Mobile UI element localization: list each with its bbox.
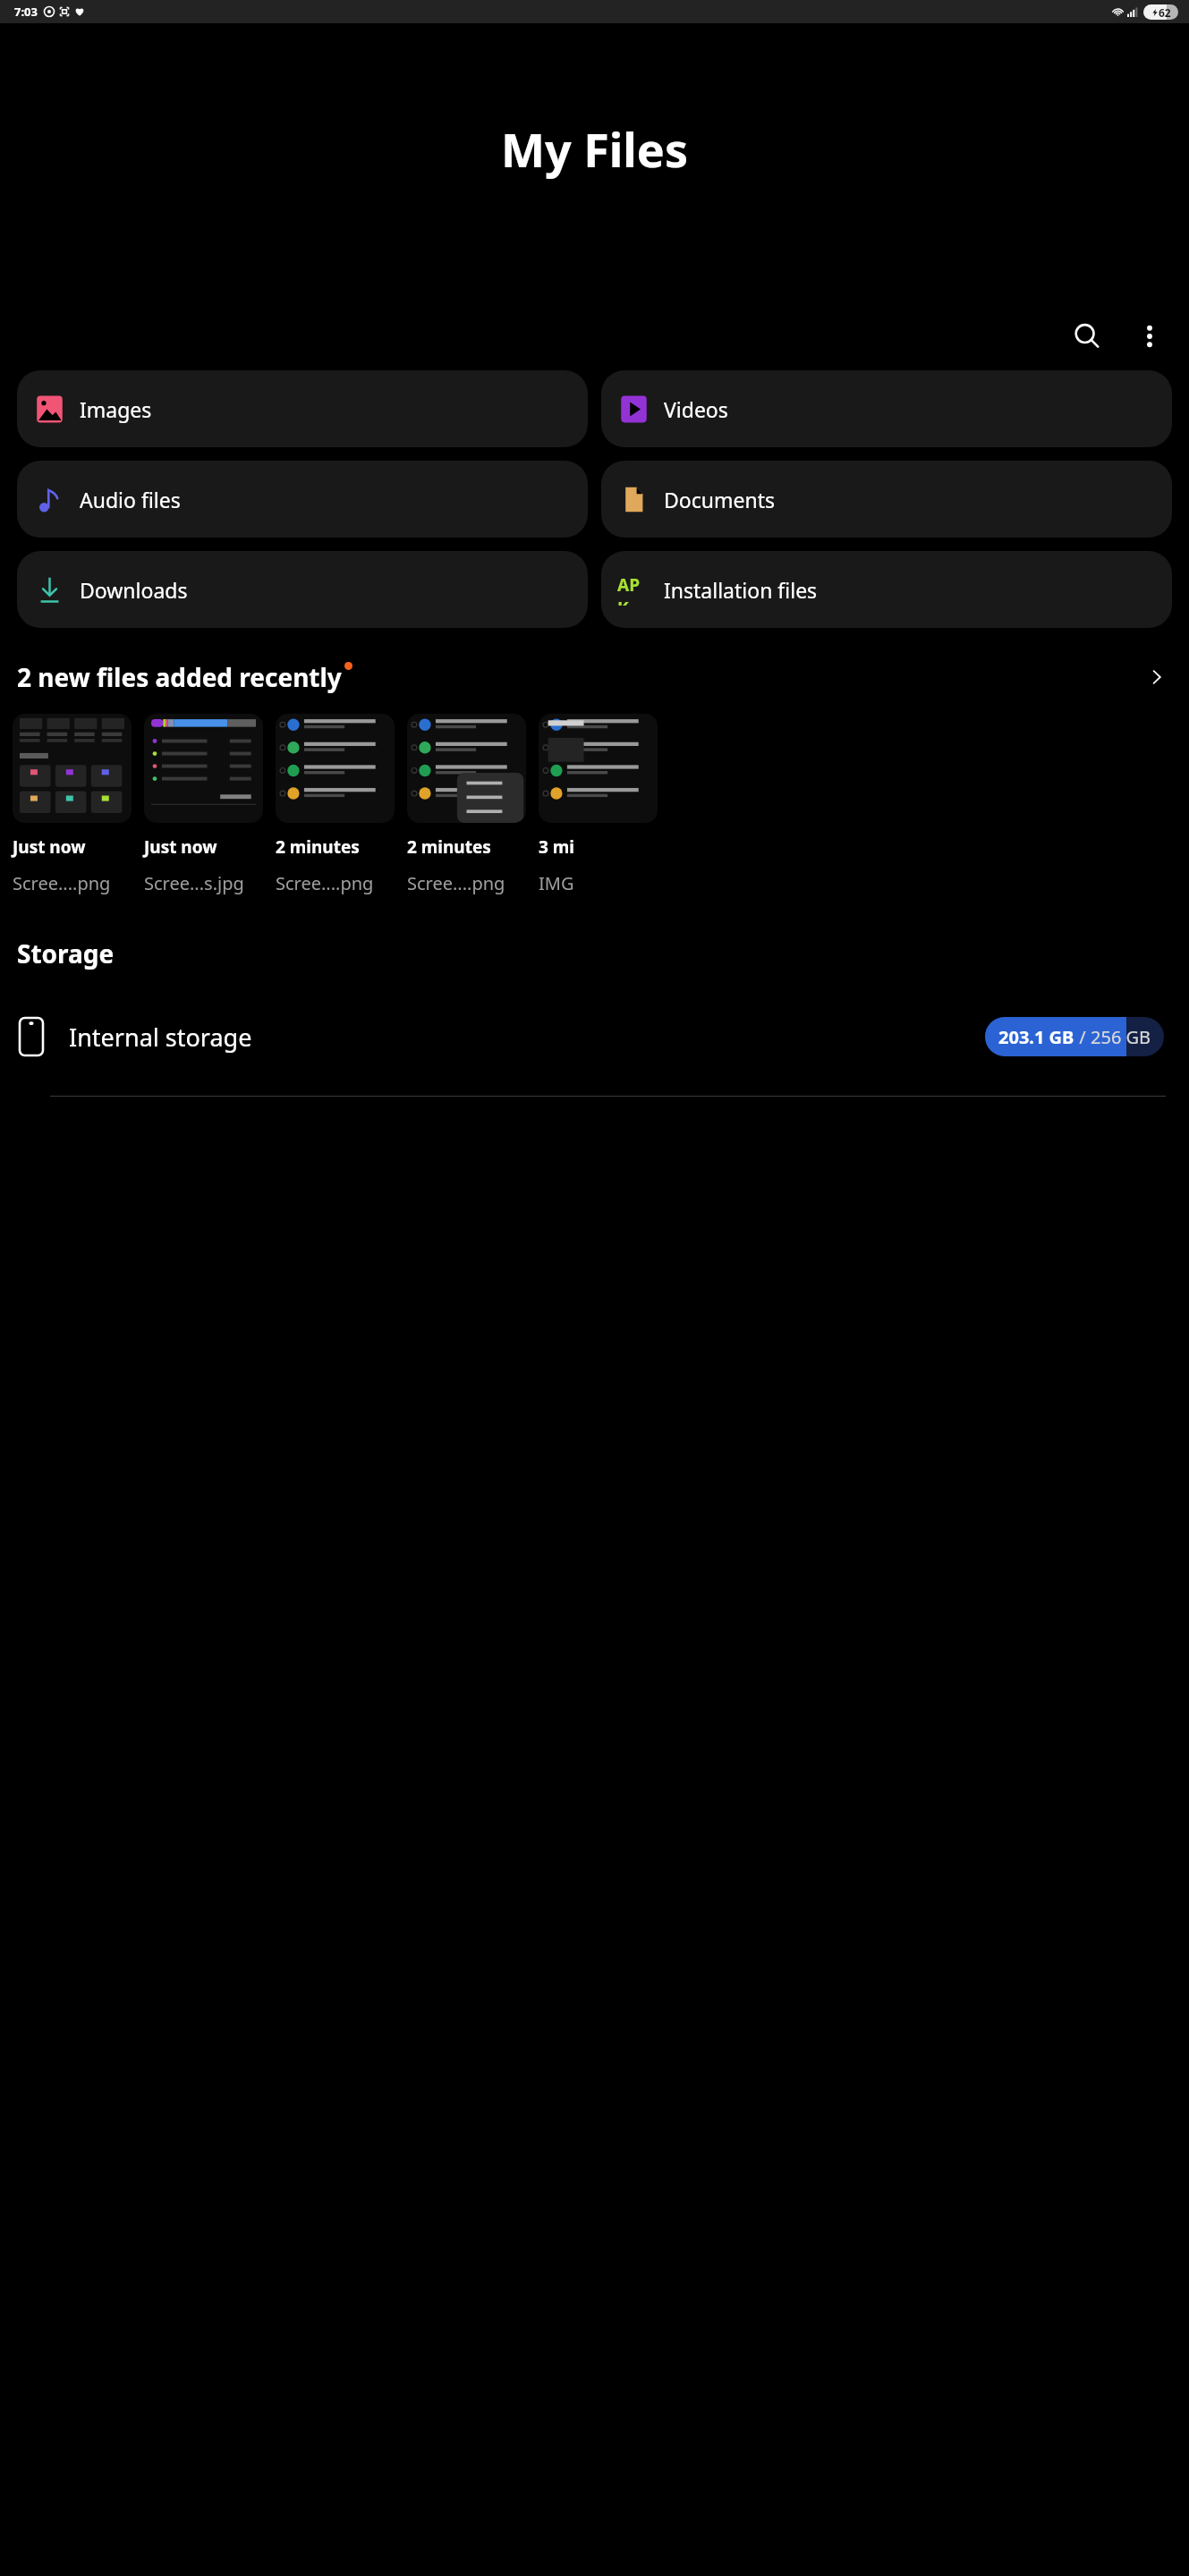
button[interactable]: More options bbox=[1125, 311, 1175, 361]
staticText: Scree....png bbox=[276, 871, 374, 895]
button[interactable]: Downloads bbox=[17, 551, 588, 628]
staticText: Images bbox=[80, 395, 152, 423]
staticText: 62 bbox=[1159, 5, 1171, 20]
staticText: Downloads bbox=[80, 576, 188, 604]
staticText: Scree...s.jpg bbox=[144, 871, 244, 895]
button[interactable]: 2 new files added recently bbox=[0, 660, 1189, 694]
staticText: Documents bbox=[664, 486, 775, 513]
staticText: Installation files bbox=[664, 576, 818, 604]
staticText: 7:03 bbox=[14, 4, 38, 20]
button[interactable]: Search bbox=[1062, 311, 1112, 361]
button[interactable]: APK bbox=[601, 551, 1172, 628]
staticText: 2 new files added recently bbox=[17, 660, 342, 694]
button[interactable]: Images bbox=[17, 370, 588, 447]
button[interactable]: 2 minutes ago bbox=[276, 714, 395, 895]
button[interactable]: Just now bbox=[13, 714, 132, 895]
staticText: 2 minutes ago bbox=[407, 835, 526, 859]
button[interactable]: Just now bbox=[144, 714, 263, 895]
staticText: Internal storage bbox=[69, 1021, 252, 1054]
button[interactable]: Videos bbox=[601, 370, 1172, 447]
staticText: Scree....png bbox=[407, 871, 505, 895]
button[interactable]: Internal storage bbox=[0, 994, 1189, 1080]
button[interactable]: Documents bbox=[601, 461, 1172, 538]
staticText: APK bbox=[617, 573, 650, 606]
button[interactable]: Audio files bbox=[17, 461, 588, 538]
staticText: / bbox=[1074, 1025, 1091, 1049]
staticText: Audio files bbox=[80, 486, 181, 513]
staticText: 2 minutes ago bbox=[276, 835, 395, 859]
button[interactable]: 3 mi bbox=[539, 714, 658, 895]
staticText: My Files bbox=[501, 117, 688, 181]
button[interactable]: 2 minutes ago bbox=[407, 714, 526, 895]
staticText: Scree....png bbox=[13, 871, 111, 895]
staticText: Just now bbox=[144, 835, 217, 859]
button[interactable]: See all bbox=[1142, 662, 1172, 692]
staticText: Videos bbox=[664, 395, 728, 423]
staticText: 203.1 GB bbox=[998, 1025, 1074, 1049]
staticText: 3 mi bbox=[539, 835, 575, 859]
staticText: IMG bbox=[539, 871, 574, 895]
staticText: Just now bbox=[13, 835, 86, 859]
staticText: Storage bbox=[17, 936, 115, 970]
staticText: 256 GB bbox=[1091, 1025, 1151, 1049]
